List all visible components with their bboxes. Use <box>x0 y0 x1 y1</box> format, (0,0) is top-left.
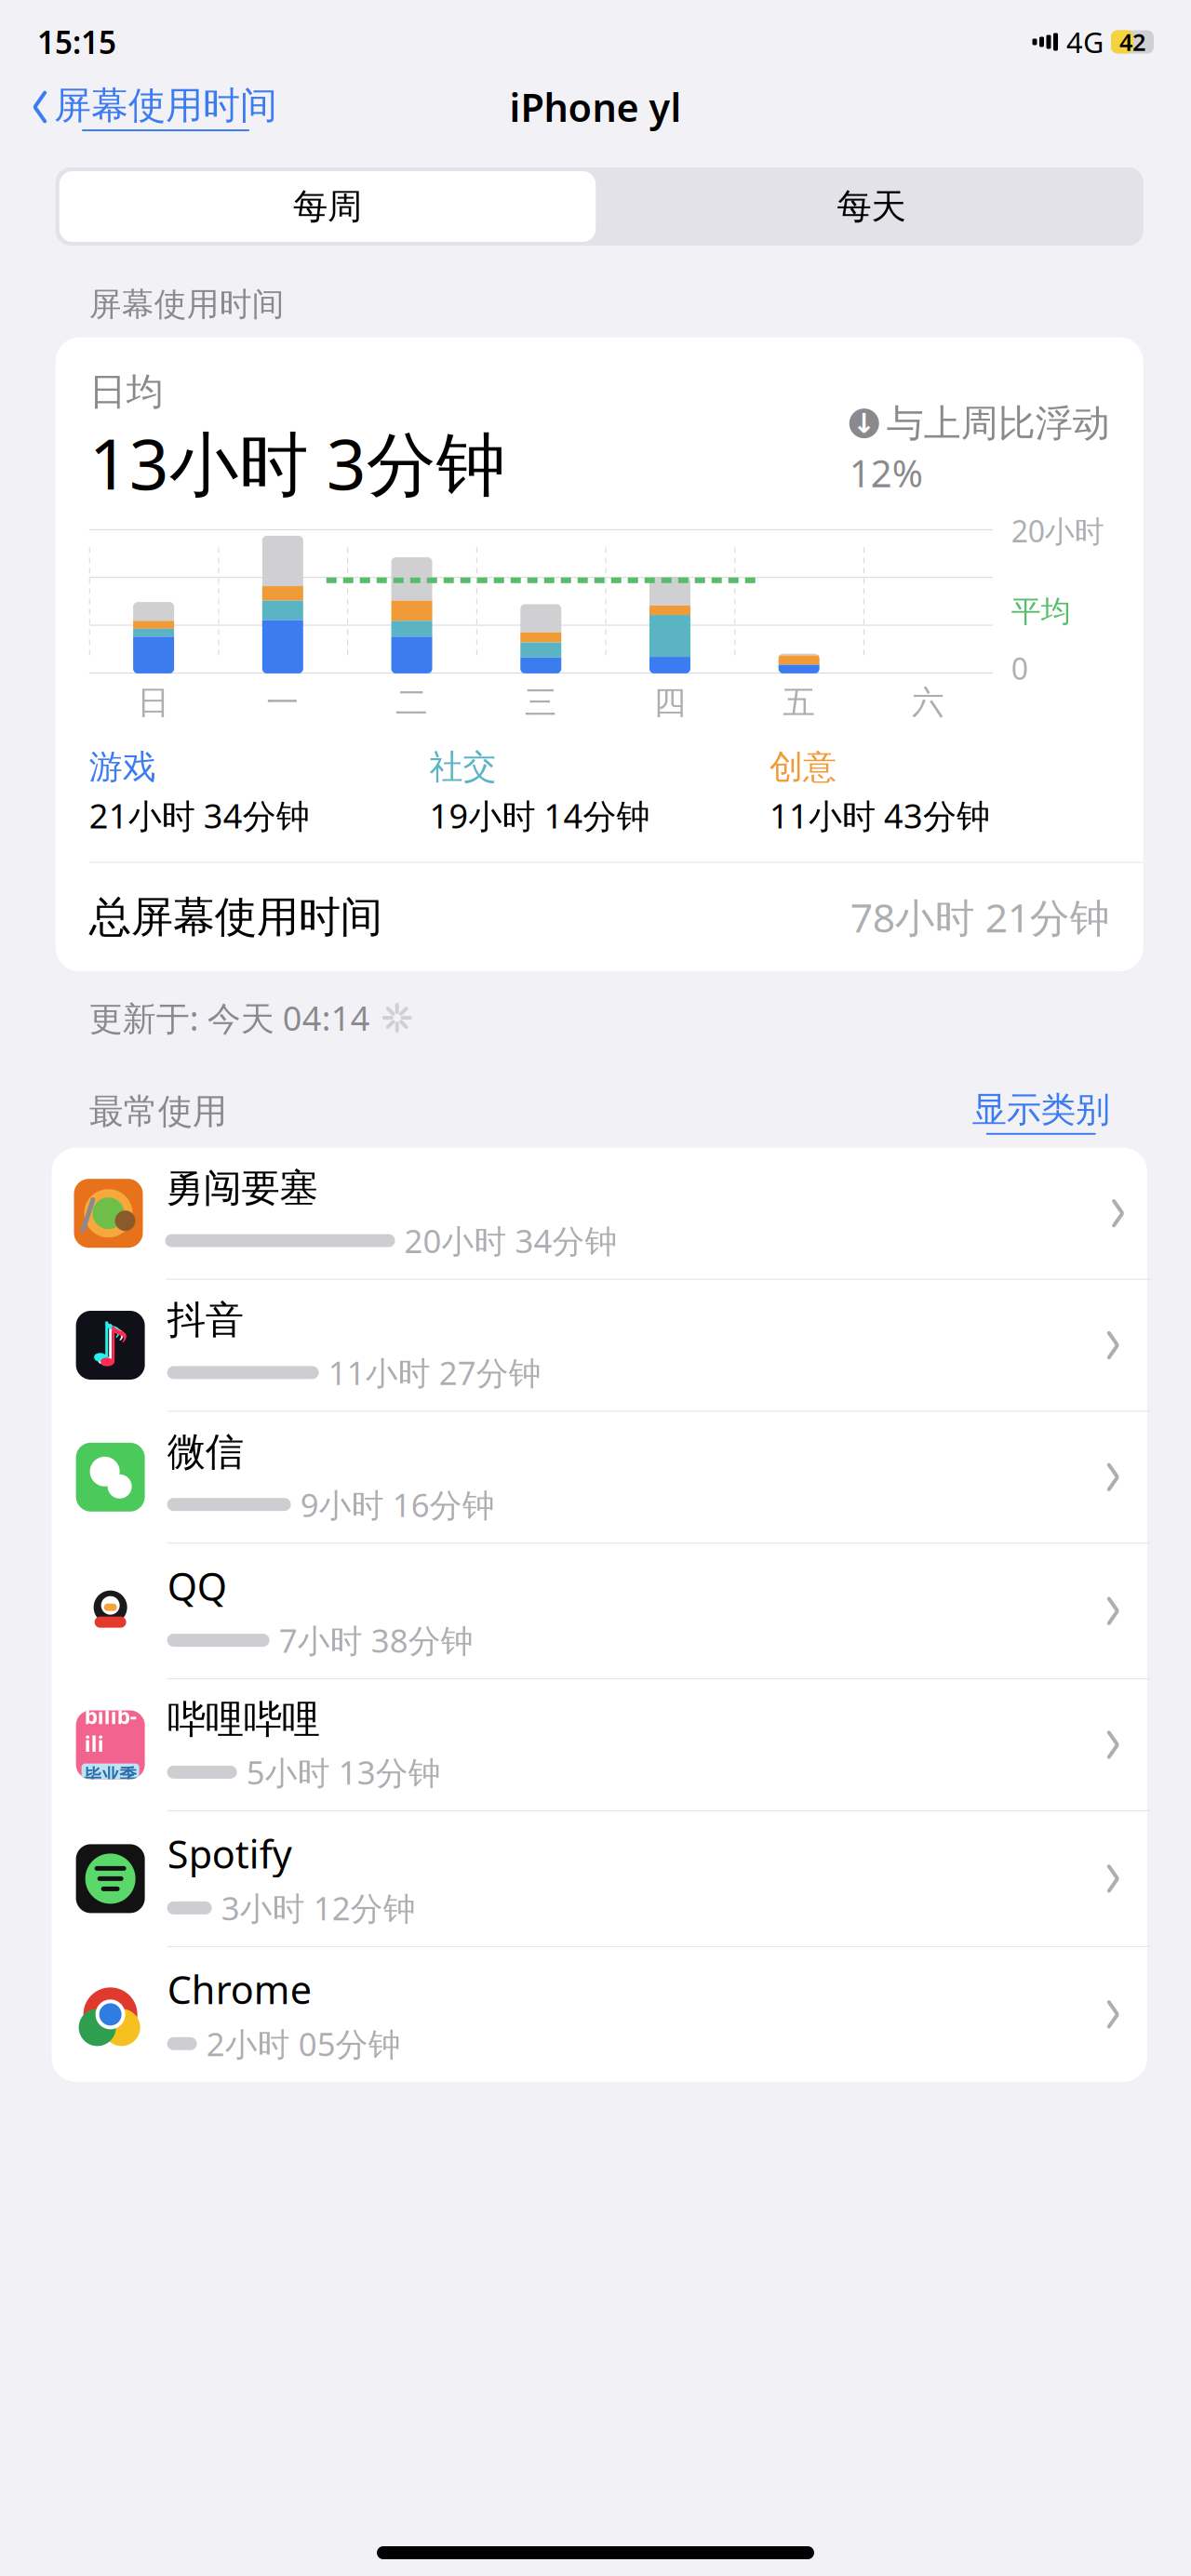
staticText: 19小时 14分钟 <box>429 793 650 838</box>
button[interactable]: 勇闯要塞 <box>52 1148 1151 1280</box>
button[interactable]: bilibili <box>54 1679 1149 1811</box>
staticText: 11小时 27分钟 <box>328 1351 541 1394</box>
staticText: 毕业季 <box>84 1765 137 1786</box>
staticText: 勇闯要塞 <box>165 1165 318 1212</box>
staticText: ♪ <box>96 1316 130 1378</box>
staticText: 抖音 <box>167 1296 243 1344</box>
staticText: Spotify <box>167 1828 292 1879</box>
staticText: 与上周比浮动 <box>887 401 1110 446</box>
staticText: 五 <box>783 683 815 722</box>
button[interactable]: 微信 <box>54 1412 1149 1544</box>
staticText: 平均 <box>1011 593 1071 630</box>
staticText: 最常使用 <box>89 1090 227 1133</box>
staticText: 20小时 <box>1011 511 1104 551</box>
staticText: 20小时 34分钟 <box>404 1219 617 1262</box>
staticText: 9小时 16分钟 <box>300 1483 495 1526</box>
staticText: 每天 <box>837 185 906 228</box>
staticText: 一 <box>266 683 299 722</box>
staticText: 屏幕使用时间 <box>89 285 285 324</box>
staticText: 11小时 43分钟 <box>770 793 990 838</box>
staticText: 微信 <box>167 1428 243 1476</box>
staticText: 42 <box>1119 26 1145 57</box>
button[interactable]: 屏幕使用时间 <box>32 77 277 137</box>
staticText: 总屏幕使用时间 <box>89 891 382 943</box>
staticText: 21小时 34分钟 <box>89 793 310 838</box>
staticText: QQ <box>167 1560 227 1611</box>
staticText: 3小时 12分钟 <box>221 1886 416 1929</box>
button[interactable]: Spotify <box>54 1811 1149 1947</box>
staticText: 创意 <box>770 746 837 788</box>
staticText: 7小时 38分钟 <box>279 1619 473 1662</box>
staticText: 显示类别 <box>972 1088 1110 1131</box>
staticText: 哔哩哔哩 <box>167 1696 320 1743</box>
staticText: 5小时 13分钟 <box>246 1751 441 1794</box>
button[interactable]: 每周 <box>56 171 600 242</box>
staticText: 四 <box>654 683 686 722</box>
staticText: 12% <box>849 448 923 498</box>
staticText: 更新于: 今天 04:14 <box>89 996 370 1040</box>
button[interactable]: ♪ <box>54 1280 1149 1412</box>
staticText: 13小时 3分钟 <box>89 416 506 509</box>
staticText: 屏幕使用时间 <box>54 83 277 128</box>
staticText: bilibili <box>84 1702 136 1758</box>
staticText: 六 <box>912 683 944 722</box>
staticText: 78小时 21分钟 <box>850 891 1110 944</box>
button[interactable]: Chrome <box>54 1947 1149 2082</box>
staticText: 日均 <box>89 369 163 415</box>
staticText: 二 <box>395 683 428 722</box>
staticText: 0 <box>1011 648 1028 688</box>
staticText: Chrome <box>167 1964 311 2015</box>
staticText: 15:15 <box>37 21 116 63</box>
staticText: ♪ <box>89 1311 124 1373</box>
staticText: iPhone yl <box>509 81 682 133</box>
button[interactable]: QQ <box>54 1544 1149 1679</box>
staticText: ♪ <box>93 1314 128 1376</box>
staticText: 三 <box>525 683 557 722</box>
staticText: ↓ <box>853 408 876 439</box>
staticText: 每周 <box>293 185 362 228</box>
staticText: 4G <box>1066 23 1104 61</box>
staticText: 社交 <box>429 746 496 788</box>
button[interactable]: 显示类别 <box>972 1088 1110 1135</box>
staticText: 日 <box>137 683 170 722</box>
staticText: 游戏 <box>89 746 156 788</box>
staticText: 2小时 05分钟 <box>206 2022 401 2065</box>
button[interactable]: 每天 <box>599 171 1143 242</box>
